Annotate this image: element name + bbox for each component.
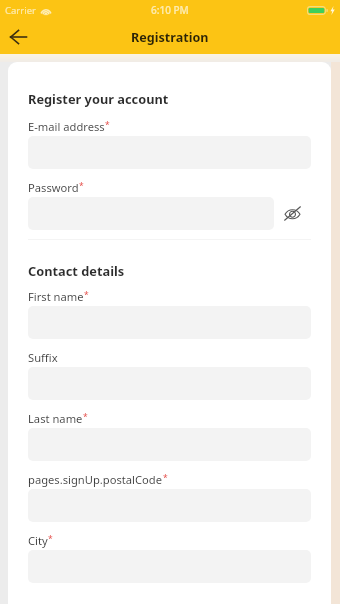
staticText: *: [48, 533, 53, 545]
staticText: *: [79, 180, 84, 192]
staticText: *: [84, 289, 89, 301]
staticText: Register your account: [28, 90, 169, 107]
staticText: *: [83, 411, 88, 423]
staticText: Password: [28, 182, 79, 195]
staticText: Carrier: [5, 4, 36, 17]
button[interactable]: Back: [2, 21, 34, 53]
staticText: City: [28, 535, 48, 548]
staticText: pages.signUp.postalCode: [28, 474, 163, 487]
staticText: Suffix: [28, 352, 58, 365]
staticText: Registration: [131, 29, 209, 46]
staticText: E-mail address: [28, 121, 105, 134]
staticText: Last name: [28, 413, 83, 426]
button[interactable]: Show password: [274, 197, 311, 230]
staticText: 6:10 PM: [151, 3, 189, 17]
staticText: Contact details: [28, 262, 125, 279]
staticText: *: [105, 119, 110, 131]
staticText: First name: [28, 291, 84, 304]
staticText: *: [163, 472, 168, 484]
